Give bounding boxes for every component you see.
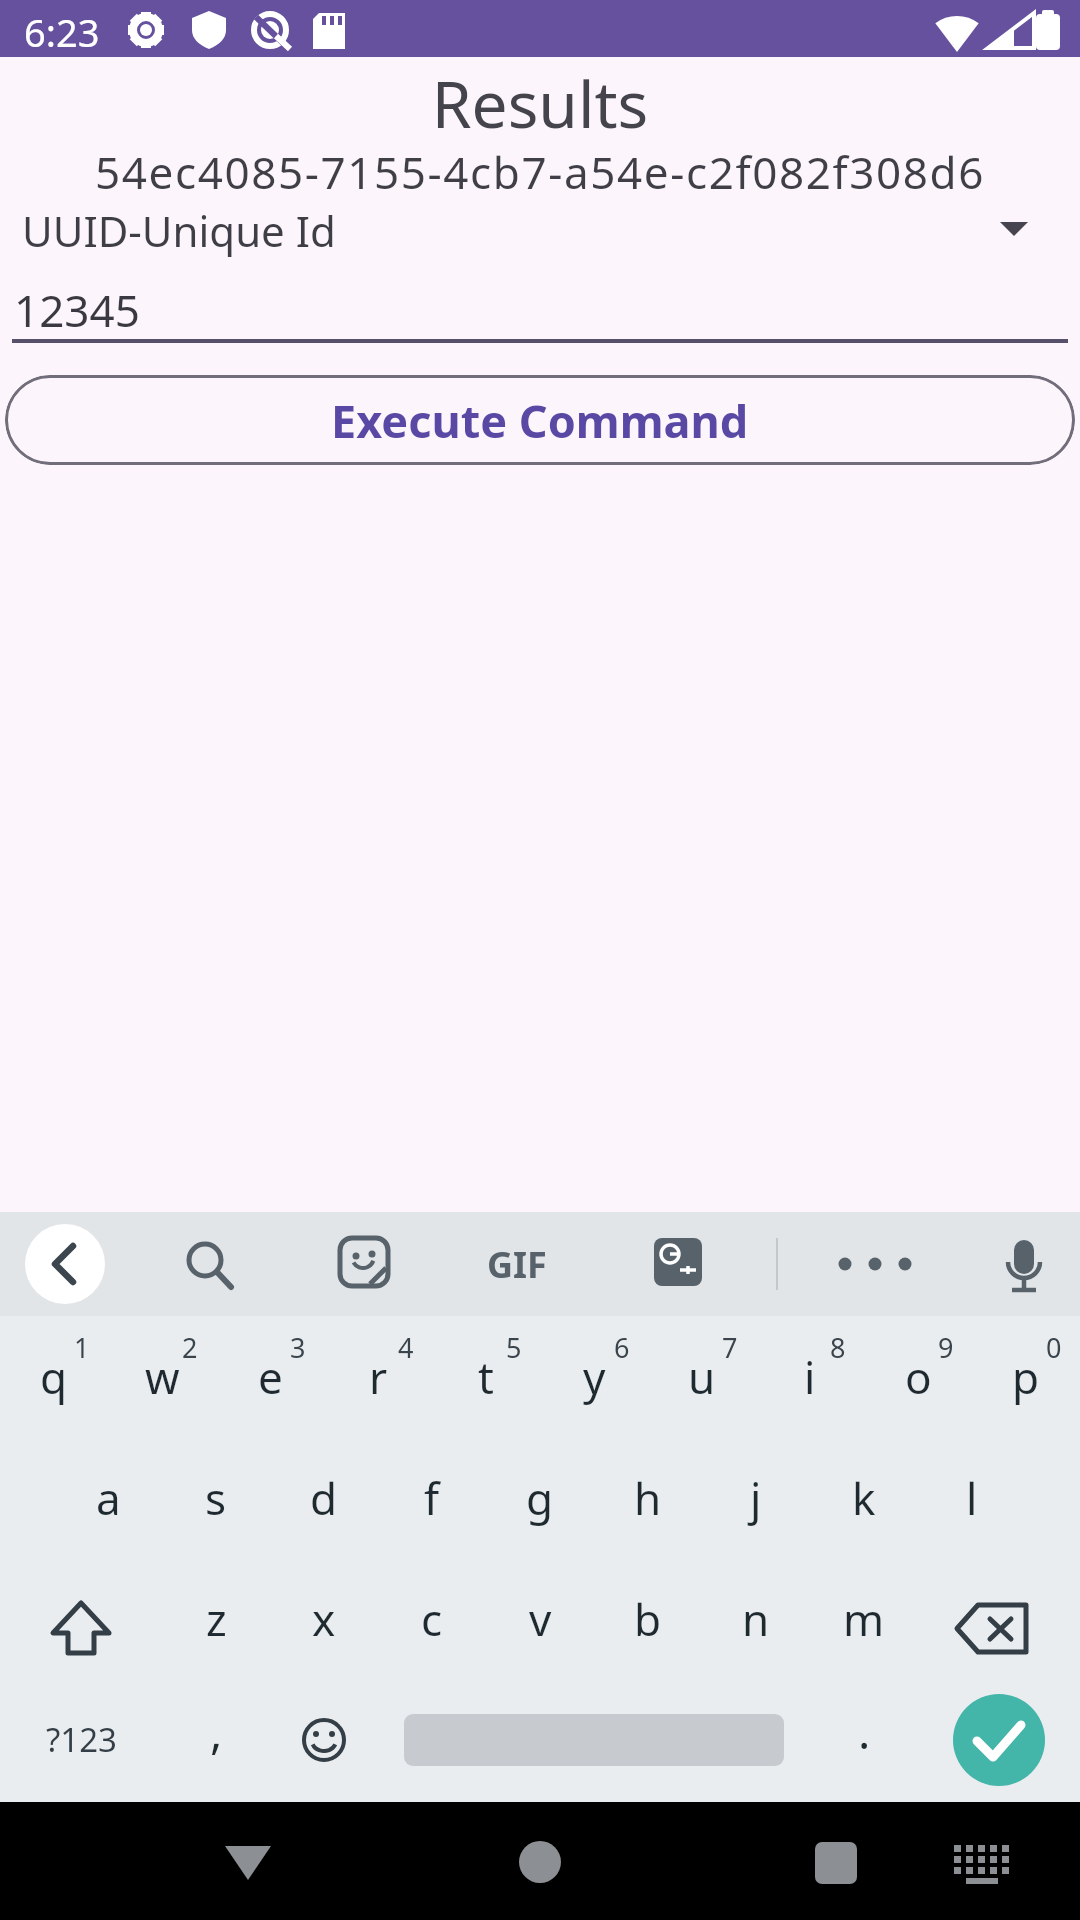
staticText: 2 (182, 1329, 198, 1366)
button[interactable] (270, 1679, 378, 1800)
button[interactable]: c (378, 1558, 486, 1679)
button[interactable]: l (918, 1437, 1026, 1558)
button[interactable] (0, 1802, 360, 1920)
staticText: GIF (487, 1240, 547, 1289)
button[interactable] (918, 1679, 1080, 1800)
button[interactable] (918, 1558, 1080, 1679)
staticText: d (310, 1468, 338, 1528)
staticText: u (688, 1347, 716, 1407)
button[interactable]: ?123 (0, 1679, 162, 1800)
staticText: q (40, 1347, 68, 1407)
staticText: e (258, 1347, 283, 1407)
staticText: t (478, 1347, 494, 1407)
staticText: 12345 (14, 280, 140, 340)
button[interactable]: a (54, 1437, 162, 1558)
staticText: m (843, 1589, 885, 1649)
button[interactable] (720, 1802, 1080, 1920)
staticText: k (852, 1468, 876, 1528)
button[interactable]: p (972, 1316, 1080, 1437)
staticText: UUID-Unique Id (22, 202, 336, 259)
button[interactable]: GIF (455, 1212, 579, 1316)
button[interactable]: w (108, 1316, 216, 1437)
staticText: x (312, 1589, 336, 1649)
button[interactable]: , (162, 1679, 270, 1800)
staticText: p (1012, 1347, 1040, 1407)
button[interactable]: UUID-Unique Id (0, 196, 1080, 256)
button[interactable] (835, 1212, 915, 1316)
button[interactable] (324, 1212, 404, 1316)
button[interactable]: h (594, 1437, 702, 1558)
button[interactable]: s (162, 1437, 270, 1558)
button[interactable]: . (810, 1679, 918, 1800)
staticText: a (96, 1468, 121, 1528)
button[interactable]: o (864, 1316, 972, 1437)
button[interactable] (0, 1558, 162, 1679)
button[interactable] (638, 1212, 718, 1316)
button[interactable] (984, 1212, 1064, 1316)
staticText: r (369, 1347, 388, 1407)
staticText: 6 (614, 1329, 630, 1366)
staticText: 9 (938, 1329, 954, 1366)
button[interactable]: x (270, 1558, 378, 1679)
button[interactable]: k (810, 1437, 918, 1558)
button[interactable]: Execute Command (5, 375, 1075, 465)
staticText: f (424, 1468, 440, 1528)
staticText: Execute Command (331, 390, 749, 451)
staticText: Results (0, 60, 1080, 147)
button[interactable]: z (162, 1558, 270, 1679)
button[interactable]: v (486, 1558, 594, 1679)
staticText: 0 (1046, 1329, 1062, 1366)
staticText: 8 (830, 1329, 846, 1366)
button[interactable] (953, 1694, 1045, 1786)
staticText: i (804, 1347, 816, 1407)
button[interactable]: t (432, 1316, 540, 1437)
button[interactable]: d (270, 1437, 378, 1558)
button[interactable]: m (810, 1558, 918, 1679)
button[interactable]: j (702, 1437, 810, 1558)
button[interactable]: e (216, 1316, 324, 1437)
button[interactable] (378, 1679, 810, 1800)
staticText: 54ec4085-7155-4cb7-a54e-c2f082f308d6 (0, 142, 1080, 202)
staticText: 3 (290, 1329, 306, 1366)
button[interactable]: u (648, 1316, 756, 1437)
button[interactable]: y (540, 1316, 648, 1437)
button[interactable]: f (378, 1437, 486, 1558)
button[interactable]: g (486, 1437, 594, 1558)
staticText: n (742, 1589, 770, 1649)
staticText: 5 (506, 1329, 522, 1366)
staticText: j (750, 1468, 762, 1528)
staticText: 6:23 (24, 6, 100, 58)
button[interactable]: b (594, 1558, 702, 1679)
staticText: o (905, 1347, 932, 1407)
staticText: w (145, 1347, 180, 1407)
staticText: h (634, 1468, 662, 1528)
staticText: ?123 (46, 1717, 117, 1762)
button[interactable]: r (324, 1316, 432, 1437)
staticText: , (210, 1700, 223, 1763)
button[interactable]: i (756, 1316, 864, 1437)
staticText: v (529, 1589, 552, 1649)
staticText: . (858, 1700, 871, 1763)
staticText: 7 (722, 1329, 738, 1366)
button[interactable] (167, 1212, 247, 1316)
staticText: s (205, 1468, 227, 1528)
staticText: g (526, 1468, 554, 1528)
button[interactable] (25, 1224, 105, 1304)
staticText: y (583, 1347, 606, 1407)
staticText: 1 (74, 1329, 90, 1366)
staticText: z (206, 1589, 227, 1649)
button[interactable]: q (0, 1316, 108, 1437)
staticText: 4 (398, 1329, 414, 1366)
staticText: b (634, 1589, 662, 1649)
button[interactable] (360, 1802, 720, 1920)
button[interactable]: n (702, 1558, 810, 1679)
staticText: l (966, 1468, 978, 1528)
staticText: c (421, 1589, 443, 1649)
